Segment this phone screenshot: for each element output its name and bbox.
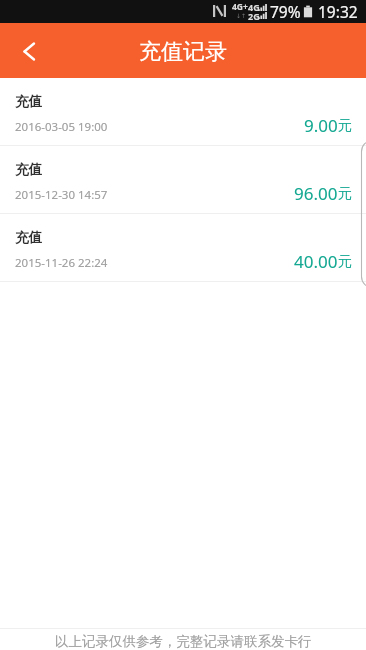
staticText: 9.00 [304, 114, 338, 137]
staticText: 以上记录仅供参考，完整记录请联系发卡行 [55, 633, 312, 650]
staticText: 2015-12-30 14:57 [15, 187, 108, 203]
staticText: 充值 [15, 161, 42, 178]
staticText: 充值记录 [139, 38, 227, 66]
staticText: 2015-11-26 22:24 [15, 255, 108, 271]
staticText: ↓↑ [236, 12, 247, 19]
button[interactable]: 充值 [0, 78, 366, 145]
staticText: 充值 [15, 229, 42, 246]
staticText: 40.00 [294, 250, 338, 273]
staticText: 元 [338, 117, 352, 135]
button[interactable]: 充值 [0, 214, 366, 281]
staticText: 4G [248, 1, 260, 13]
staticText: 元 [338, 253, 352, 271]
staticText: 79% [270, 1, 301, 22]
button[interactable]: Back [6, 30, 48, 72]
staticText: 充值 [15, 93, 42, 110]
staticText: 4G+ [232, 1, 248, 13]
staticText: 2016-03-05 19:00 [15, 119, 108, 135]
staticText: 2G [248, 10, 260, 22]
staticText: 元 [338, 185, 352, 203]
button[interactable]: 充值 [0, 146, 366, 213]
staticText: 96.00 [294, 182, 338, 205]
staticText: 19:32 [318, 1, 358, 22]
